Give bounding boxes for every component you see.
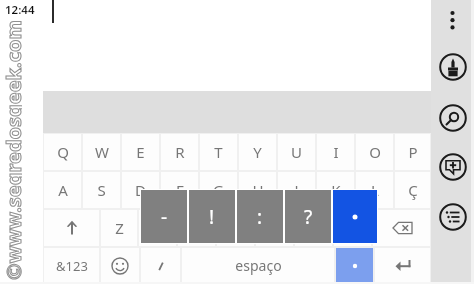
staticText: Z [115,218,124,238]
button[interactable]: ! [189,190,235,243]
button[interactable]: S [83,172,120,208]
button[interactable]: Theme [439,53,467,81]
button[interactable]: N [295,210,332,246]
button[interactable]: J [278,172,315,208]
staticText: N [308,218,320,238]
button[interactable]: K [317,172,354,208]
staticText: A [58,180,68,200]
staticText: ! [209,204,215,230]
staticText: G [213,180,224,200]
staticText: J [294,180,299,200]
staticText: F [176,180,184,200]
button[interactable]: P [395,134,430,170]
staticText: 12:44 [5,2,35,18]
button[interactable]: M [334,210,371,246]
staticText: D [135,180,146,200]
button[interactable]: More options [442,10,463,31]
button[interactable] [336,248,373,283]
button[interactable]: U [278,134,315,170]
staticText: Ç [408,180,418,200]
staticText: espaço [235,256,282,275]
button[interactable]: Clipboard [439,203,467,231]
staticText: R [175,142,185,162]
staticText: L [371,180,379,200]
staticText: P [408,142,418,162]
button[interactable]: V [217,210,254,246]
button[interactable]: ? [285,190,331,243]
button[interactable]: - [141,190,187,243]
button[interactable]: B [256,210,293,246]
button[interactable]: C [178,210,215,246]
button[interactable]: &123 [44,248,99,283]
button[interactable]: Q [44,134,81,170]
staticText: H [252,180,264,200]
staticText: T [214,142,223,162]
button[interactable]: L [356,172,393,208]
staticText: U [291,142,302,162]
staticText: ©www.segredosgeek.com [0,20,22,280]
button[interactable]: O [356,134,393,170]
button[interactable]: Search [439,104,467,132]
staticText: X [153,218,162,238]
staticText: V [231,218,241,238]
button[interactable] [44,210,99,246]
staticText: : [257,204,263,230]
button[interactable]: E [122,134,159,170]
staticText: ? [304,204,313,230]
button[interactable]: H [239,172,276,208]
button[interactable]: espaço [182,248,334,283]
button[interactable] [101,248,139,283]
button[interactable]: Y [239,134,276,170]
staticText: ©www.segredosgeek.com [0,20,22,280]
staticText: M [346,218,360,238]
button[interactable]: T [200,134,237,170]
staticText: Y [253,142,262,162]
button[interactable]: I [317,134,354,170]
button[interactable]: : [237,190,283,243]
button[interactable] [375,248,430,283]
staticText: E [136,142,145,162]
button[interactable] [333,190,377,243]
staticText: K [331,180,341,200]
staticText: &123 [56,257,88,275]
button[interactable]: G [200,172,237,208]
button[interactable]: X [139,210,176,246]
button[interactable]: Ç [395,172,430,208]
button[interactable]: A [44,172,81,208]
staticText: I [333,142,339,162]
button[interactable]: W [83,134,120,170]
button[interactable]: R [161,134,198,170]
staticText: S [97,180,106,200]
button[interactable] [141,248,180,283]
staticText: Q [57,142,69,162]
button[interactable]: Z [101,210,137,246]
staticText: O [369,142,381,162]
staticText: W [95,142,109,162]
button[interactable]: D [122,172,159,208]
button[interactable]: F [161,172,198,208]
button[interactable] [373,210,430,246]
staticText: - [161,204,168,230]
button[interactable]: Sticker [439,153,467,181]
